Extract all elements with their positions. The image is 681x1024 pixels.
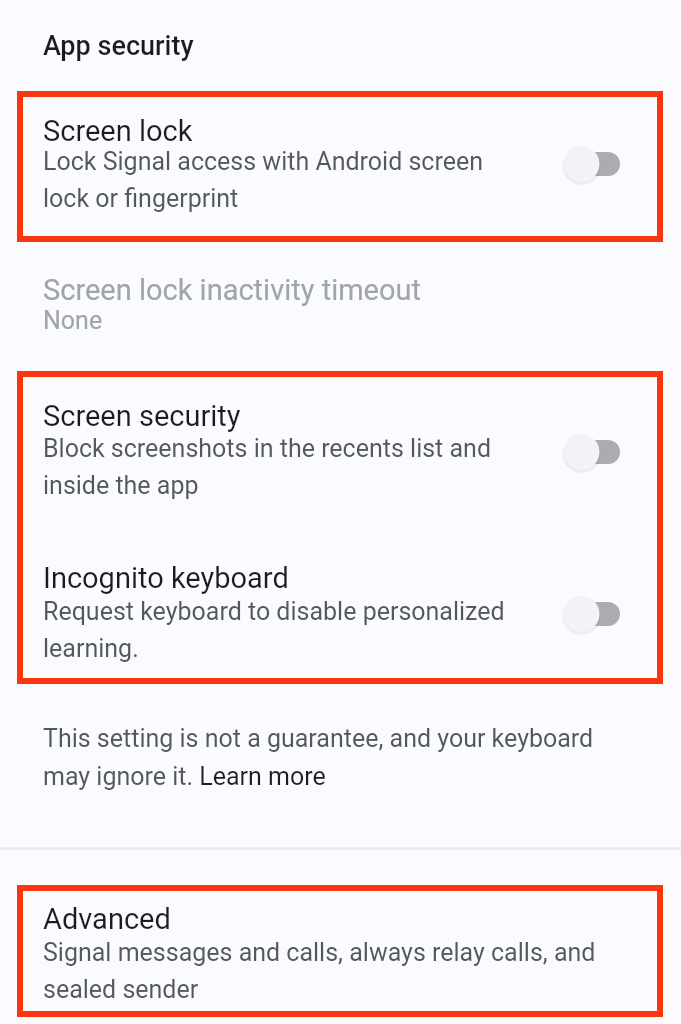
- button[interactable]: Screen security: [17, 380, 663, 525]
- staticText: Incognito keyboard: [43, 561, 289, 595]
- button[interactable]: [556, 142, 626, 186]
- staticText: This setting is not a guarantee, and you…: [43, 724, 594, 791]
- button[interactable]: Screen lock: [17, 97, 663, 236]
- button[interactable]: Incognito keyboard: [17, 545, 663, 681]
- button[interactable]: [556, 592, 626, 636]
- staticText: Request keyboard to disable personalized…: [43, 597, 505, 663]
- staticText: Lock Signal access with Android screen l…: [43, 147, 484, 213]
- staticText: Signal messages and calls, always relay …: [43, 938, 596, 1004]
- button[interactable]: [556, 430, 626, 474]
- staticText: Screen lock: [43, 114, 193, 148]
- button[interactable]: Advanced: [17, 891, 663, 1017]
- staticText: None: [43, 306, 103, 335]
- staticText: Advanced: [43, 902, 171, 936]
- staticText: Screen lock inactivity timeout: [43, 273, 422, 307]
- staticText: Block screenshots in the recents list an…: [43, 434, 491, 500]
- staticText: App security: [43, 30, 194, 62]
- staticText: Screen security: [43, 399, 241, 433]
- button[interactable]: [197, 762, 339, 792]
